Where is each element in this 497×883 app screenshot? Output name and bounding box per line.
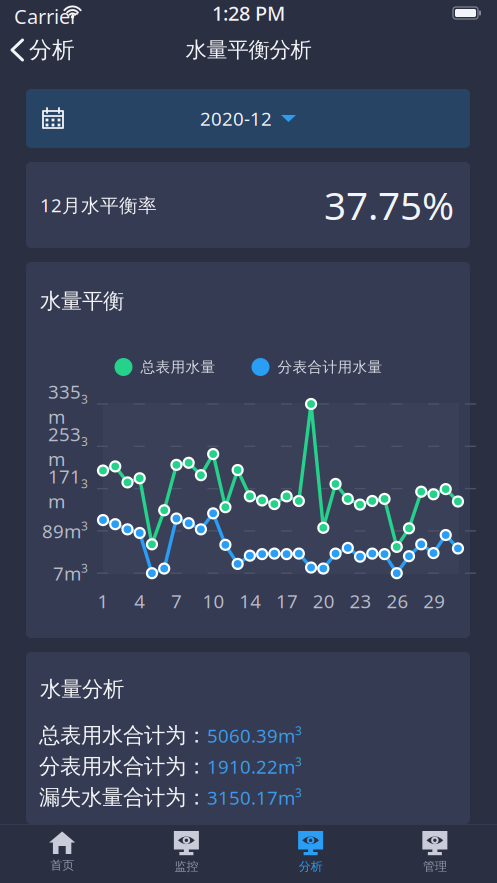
staticText: 253m	[48, 421, 81, 471]
staticText: 总表用水合计为：	[39, 722, 207, 749]
staticText: 171m	[48, 464, 81, 513]
staticText: 23	[350, 589, 372, 613]
staticText: 335m	[48, 379, 81, 429]
staticText: 20	[313, 589, 335, 613]
staticText: Carrier	[14, 3, 78, 30]
staticText: 10	[202, 589, 224, 613]
staticText: 3	[295, 784, 302, 800]
button[interactable]: 监控	[124, 825, 248, 883]
staticText: 1910.22m	[207, 754, 295, 779]
button[interactable]: 2020-12	[26, 89, 470, 148]
staticText: 水量平衡分析	[185, 37, 311, 63]
staticText: 26	[386, 589, 408, 613]
staticText: 监控	[174, 859, 198, 874]
staticText: 5060.39m	[207, 723, 295, 748]
staticText: 3	[81, 476, 88, 491]
staticText: 7	[171, 589, 182, 613]
staticText: 首页	[50, 858, 74, 873]
staticText: 管理	[423, 859, 447, 874]
staticText: 3	[81, 560, 88, 576]
staticText: 漏失水量合计为：	[39, 784, 207, 811]
button[interactable]: 管理	[373, 825, 497, 883]
staticText: 37.75%	[324, 179, 454, 231]
staticText: 12月水平衡率	[40, 193, 157, 217]
staticText: 分析	[299, 859, 323, 874]
staticText: 分表合计用水量	[277, 358, 382, 376]
staticText: 29	[423, 589, 445, 613]
staticText: 3	[81, 391, 88, 407]
staticText: 3	[295, 753, 302, 769]
staticText: 总表用水量	[140, 358, 215, 376]
staticText: 3	[295, 722, 302, 738]
staticText: 1:28 PM	[212, 0, 285, 26]
button[interactable]: 分析	[248, 825, 373, 883]
staticText: 3150.17m	[207, 785, 295, 810]
staticText: 7m	[53, 561, 81, 586]
staticText: 水量平衡	[40, 288, 124, 314]
staticText: 89m	[42, 518, 81, 543]
staticText: 分表用水合计为：	[39, 753, 207, 780]
staticText: 4	[134, 589, 145, 613]
staticText: 3	[81, 433, 88, 449]
staticText: 水量分析	[40, 676, 124, 702]
staticText: 1	[97, 589, 108, 613]
staticText: 分析	[29, 36, 75, 64]
button[interactable]: 分析	[0, 28, 110, 72]
staticText: 3	[81, 518, 88, 534]
button[interactable]: 首页	[0, 825, 124, 883]
staticText: 2020-12	[200, 106, 272, 131]
staticText: 17	[276, 589, 298, 613]
staticText: 14	[239, 589, 261, 613]
